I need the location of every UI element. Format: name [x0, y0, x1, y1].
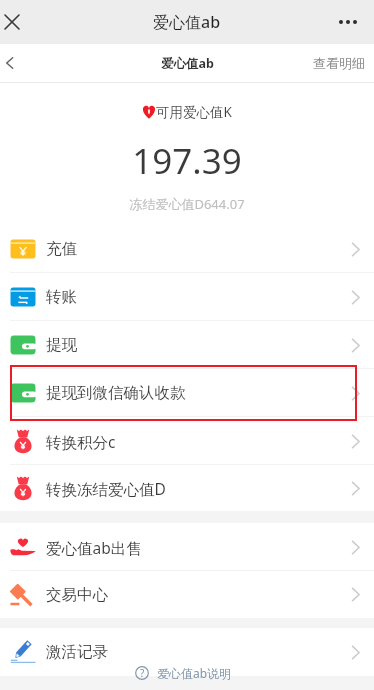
staticText: 转换冻结爱心值D [46, 478, 166, 499]
button[interactable]: Close [0, 0, 30, 44]
staticText: 爱心值ab说明 [157, 665, 232, 681]
staticText: 197.39 [0, 137, 374, 185]
button[interactable]: More options [326, 0, 374, 44]
button[interactable]: 转换冻结爱心值D [0, 465, 374, 511]
staticText: ? [140, 666, 145, 680]
staticText: 爱心值ab [153, 11, 221, 33]
staticText: 爱心值ab出售 [46, 537, 142, 558]
staticText: 充值 [46, 239, 77, 259]
staticText: 爱心值ab [161, 55, 214, 72]
staticText: 激活记录 [46, 642, 108, 662]
staticText: 提现 [46, 335, 77, 355]
button[interactable]: ? [135, 662, 232, 684]
button[interactable]: 提现 [0, 321, 374, 369]
button[interactable]: 激活记录 [0, 628, 374, 676]
staticText: 冻结爱心值D644.07 [0, 195, 374, 213]
staticText: 提现到微信确认收款 [46, 383, 186, 403]
button[interactable]: 转换积分c [0, 417, 374, 465]
staticText: 可用爱心值K [156, 103, 232, 121]
staticText: 查看明细 [313, 55, 365, 71]
button[interactable]: 提现到微信确认收款 [0, 369, 374, 417]
button[interactable]: 交易中心 [0, 571, 374, 618]
staticText: 交易中心 [46, 585, 108, 605]
button[interactable]: 爱心值ab出售 [0, 523, 374, 571]
button[interactable]: Back [0, 44, 19, 82]
button[interactable]: 转账 [0, 273, 374, 321]
button[interactable]: 查看明细 [313, 44, 365, 82]
staticText: 转换积分c [46, 431, 116, 452]
staticText: 转账 [46, 287, 77, 307]
button[interactable]: 充值 [0, 225, 374, 273]
